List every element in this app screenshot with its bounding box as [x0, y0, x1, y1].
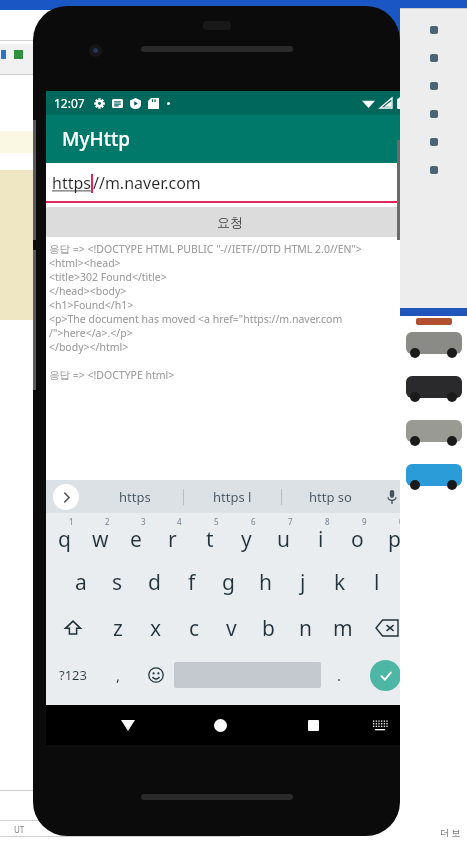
- button[interactable]: Emoji: [137, 651, 174, 699]
- button[interactable]: x: [137, 605, 175, 651]
- staticText: 1: [69, 516, 74, 527]
- staticText: <title>302 Found</title>: [49, 270, 167, 284]
- staticText: e: [130, 525, 142, 554]
- button[interactable]: 9: [339, 513, 376, 559]
- staticText: q: [58, 525, 71, 554]
- staticText: n: [299, 614, 312, 643]
- button[interactable]: 6: [228, 513, 265, 559]
- staticText: 요청: [217, 214, 243, 230]
- staticText: a: [75, 568, 87, 597]
- button[interactable]: Home: [193, 705, 248, 745]
- button[interactable]: Back: [100, 705, 155, 745]
- staticText: g: [222, 568, 235, 597]
- staticText: <html><head>: [49, 256, 121, 270]
- staticText: t: [206, 525, 214, 554]
- staticText: s: [112, 568, 123, 597]
- staticText: o: [351, 525, 364, 554]
- staticText: m: [333, 614, 353, 643]
- button[interactable]: h: [247, 559, 284, 605]
- staticText: 응답 => <!DOCTYPE html>: [49, 368, 175, 382]
- button[interactable]: 8: [302, 513, 339, 559]
- staticText: ,: [116, 665, 121, 685]
- staticText: h: [259, 568, 272, 597]
- staticText: 응답 => <!DOCTYPE HTML PUBLIC "-//IETF//DT…: [49, 242, 362, 256]
- button[interactable]: f: [173, 559, 210, 605]
- staticText: </head><body>: [49, 284, 127, 298]
- button[interactable]: c: [175, 605, 213, 651]
- staticText: //m.naver.com: [93, 172, 201, 194]
- staticText: MyHttp: [62, 126, 131, 152]
- staticText: v: [226, 614, 237, 643]
- button[interactable]: .: [321, 651, 358, 699]
- button[interactable]: 0: [376, 513, 400, 559]
- button[interactable]: Voice input: [379, 490, 400, 504]
- staticText: <h1>Found</h1>: [49, 298, 134, 312]
- button[interactable]: https: [86, 488, 183, 506]
- staticText: y: [241, 525, 252, 554]
- button[interactable]: 요청: [46, 207, 400, 237]
- staticText: UT: [14, 824, 25, 835]
- staticText: .: [337, 665, 342, 685]
- staticText: 8: [325, 516, 330, 527]
- staticText: k: [334, 568, 346, 597]
- staticText: d: [148, 568, 161, 597]
- button[interactable]: a: [63, 559, 99, 605]
- button[interactable]: b: [250, 605, 287, 651]
- button[interactable]: https: [46, 163, 400, 203]
- staticText: 9: [362, 516, 367, 527]
- staticText: 0: [399, 516, 400, 527]
- button[interactable]: 1: [46, 513, 82, 559]
- button[interactable]: Recents: [286, 705, 341, 745]
- staticText: j: [300, 568, 306, 597]
- staticText: ?123: [59, 666, 87, 684]
- staticText: i: [318, 525, 324, 554]
- button[interactable]: Expand toolbar: [53, 484, 79, 510]
- button[interactable]: Enter: [370, 660, 400, 691]
- staticText: p: [388, 525, 400, 554]
- button[interactable]: ?123: [46, 651, 100, 699]
- button[interactable]: l: [358, 559, 395, 605]
- staticText: </body></html>: [49, 340, 129, 354]
- button[interactable]: 3: [118, 513, 154, 559]
- button[interactable]: m: [324, 605, 361, 651]
- button[interactable]: ,: [100, 651, 137, 699]
- staticText: l: [374, 568, 380, 597]
- staticText: 12:07: [54, 95, 85, 111]
- staticText: z: [113, 614, 123, 643]
- button[interactable]: j: [284, 559, 321, 605]
- staticText: 더 보: [440, 826, 461, 838]
- button[interactable]: k: [321, 559, 358, 605]
- button[interactable]: g: [210, 559, 247, 605]
- button[interactable]: https l: [184, 488, 281, 506]
- staticText: 6: [251, 516, 256, 527]
- staticText: x: [150, 614, 162, 643]
- staticText: <p>The document has moved <a href="https…: [49, 312, 343, 326]
- staticText: 4: [177, 516, 182, 527]
- button[interactable]: Switch keyboard: [352, 705, 400, 745]
- button[interactable]: Shift: [46, 605, 99, 651]
- staticText: b: [262, 614, 275, 643]
- button[interactable]: 5: [191, 513, 228, 559]
- staticText: c: [189, 614, 200, 643]
- staticText: https l: [213, 488, 252, 506]
- button[interactable]: 2: [82, 513, 118, 559]
- staticText: 7: [288, 516, 293, 527]
- button[interactable]: s: [99, 559, 136, 605]
- staticText: 3: [141, 516, 146, 527]
- button[interactable]: d: [136, 559, 173, 605]
- button[interactable]: 7: [265, 513, 302, 559]
- staticText: f: [188, 568, 196, 597]
- button[interactable]: v: [213, 605, 250, 651]
- button[interactable]: http so: [282, 488, 379, 506]
- button[interactable]: n: [287, 605, 324, 651]
- staticText: 5: [214, 516, 219, 527]
- button[interactable]: Backspace: [361, 605, 400, 651]
- staticText: 2: [105, 516, 110, 527]
- button[interactable]: z: [99, 605, 137, 651]
- staticText: /">here</a>.</p>: [49, 326, 133, 340]
- staticText: w: [92, 525, 109, 554]
- staticText: r: [168, 525, 177, 554]
- button[interactable]: 4: [154, 513, 191, 559]
- staticText: http so: [309, 488, 352, 506]
